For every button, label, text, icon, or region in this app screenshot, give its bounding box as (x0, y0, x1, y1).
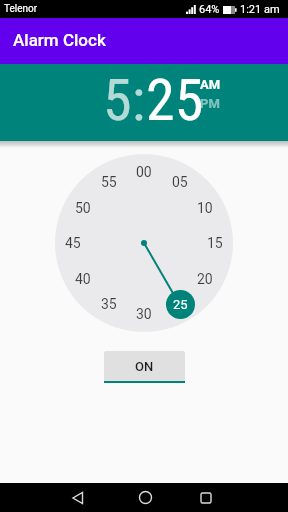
staticText: 25 (173, 297, 188, 312)
button[interactable] (72, 492, 84, 504)
button[interactable]: 25 (166, 290, 195, 319)
staticText: 45 (65, 235, 81, 251)
button[interactable]: PM (200, 96, 220, 111)
staticText: 50 (75, 200, 91, 216)
button[interactable] (200, 492, 212, 504)
staticText: 64% (199, 3, 220, 16)
staticText: 05 (172, 174, 188, 190)
button[interactable]: 25 (146, 66, 204, 134)
staticText: 00 (136, 164, 152, 180)
staticText: 10 (197, 200, 213, 216)
button[interactable]: ON (104, 351, 185, 383)
staticText: 15 (207, 235, 223, 251)
staticText: 30 (136, 306, 152, 322)
staticText: 20 (197, 271, 213, 287)
staticText: 55 (101, 174, 117, 190)
staticText: 1:21 am (240, 3, 280, 16)
button[interactable]: 5: (103, 66, 146, 134)
staticText: 40 (75, 271, 91, 287)
button[interactable] (139, 491, 152, 504)
staticText: 35 (101, 296, 117, 312)
button[interactable]: AM (200, 77, 221, 92)
staticText: Telenor (4, 3, 38, 15)
staticText: ON (135, 359, 154, 374)
staticText: Alarm Clock (13, 30, 106, 50)
